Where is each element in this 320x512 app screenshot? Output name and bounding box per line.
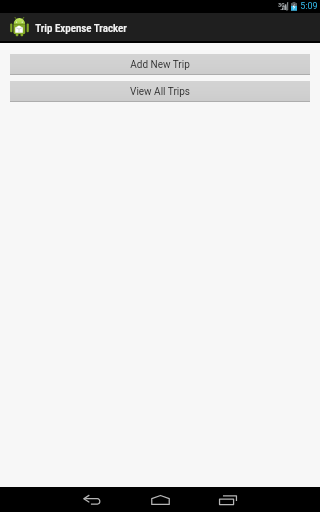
staticText: View All Trips bbox=[130, 86, 190, 98]
button[interactable]: Add New Trip bbox=[10, 54, 310, 75]
staticText: Trip Expense Tracker bbox=[35, 22, 127, 35]
button[interactable]: Back bbox=[60, 487, 124, 512]
button[interactable]: Home bbox=[128, 487, 192, 512]
staticText: 3G bbox=[278, 2, 285, 8]
button[interactable]: View All Trips bbox=[10, 81, 310, 102]
staticText: 5:09 bbox=[300, 1, 318, 12]
button[interactable]: Recent apps bbox=[196, 487, 260, 512]
staticText: Add New Trip bbox=[130, 59, 190, 71]
